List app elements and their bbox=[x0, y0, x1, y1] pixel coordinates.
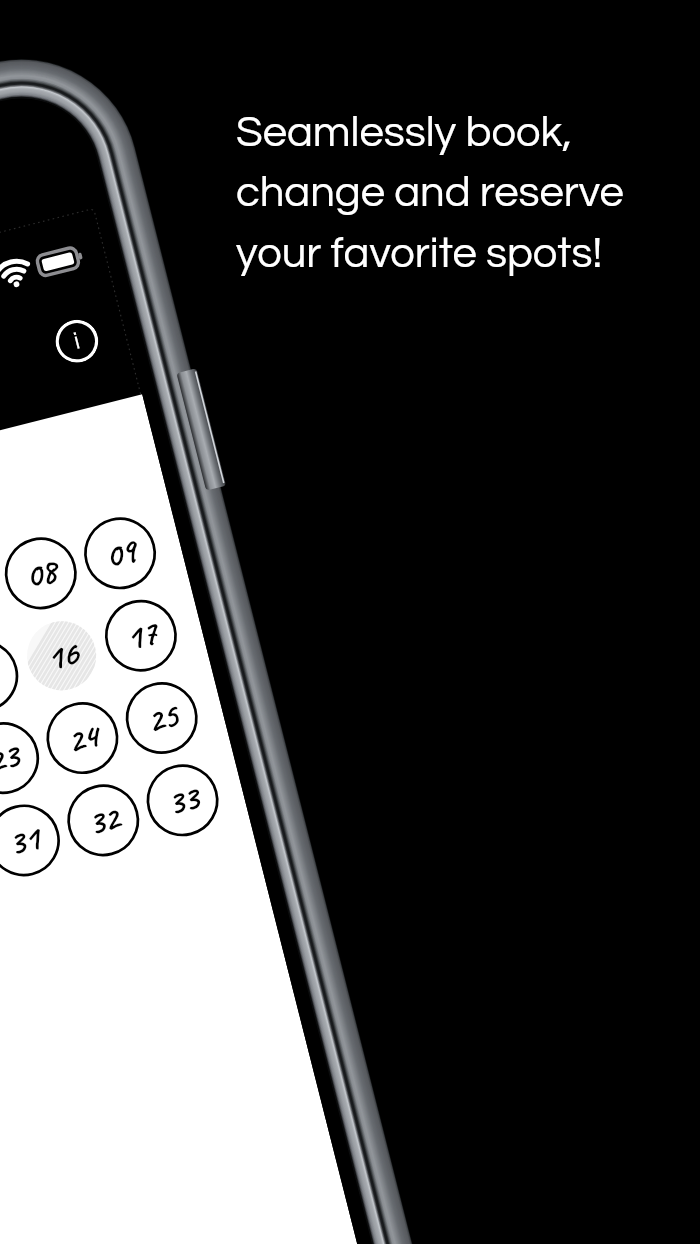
button[interactable]: 24 bbox=[40, 696, 124, 780]
staticText: 25 bbox=[142, 693, 182, 742]
button[interactable]: 33 bbox=[141, 758, 225, 842]
staticText: 09 bbox=[100, 528, 140, 578]
button[interactable]: 25 bbox=[120, 676, 204, 760]
staticText: 16 bbox=[41, 631, 83, 680]
staticText: 32 bbox=[83, 796, 124, 845]
staticText: 33 bbox=[162, 776, 203, 825]
button[interactable]: 32 bbox=[61, 778, 145, 862]
button[interactable]: Information bbox=[51, 315, 103, 367]
button[interactable]: 17 bbox=[99, 594, 183, 677]
staticText: 17 bbox=[121, 611, 161, 660]
staticText: 31 bbox=[3, 816, 44, 865]
button[interactable]: 08 bbox=[0, 531, 83, 615]
staticText: 24 bbox=[62, 713, 103, 763]
button[interactable]: 23 bbox=[0, 716, 45, 800]
button[interactable]: 15 bbox=[0, 634, 24, 718]
staticText: 08 bbox=[20, 548, 61, 598]
staticText: Seamlessly book, change and reserve your… bbox=[236, 110, 624, 276]
staticText: 23 bbox=[0, 733, 23, 783]
staticText: i bbox=[71, 328, 82, 354]
button[interactable]: 31 bbox=[0, 799, 66, 882]
button[interactable]: 09 bbox=[78, 511, 162, 595]
button[interactable]: 16 bbox=[20, 614, 103, 697]
